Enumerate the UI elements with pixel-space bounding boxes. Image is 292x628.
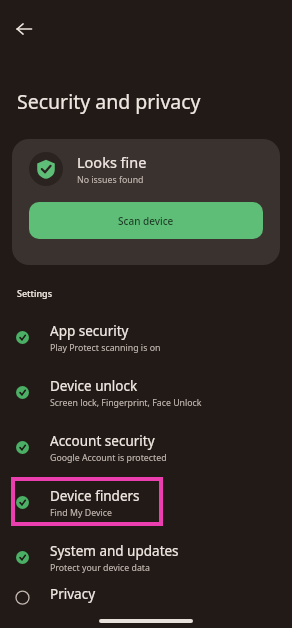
button[interactable]: Device finders bbox=[0, 475, 292, 530]
button[interactable]: Device unlock bbox=[0, 365, 292, 420]
staticText: Play Protect scanning is on bbox=[50, 342, 161, 354]
staticText: No issues found bbox=[77, 174, 144, 186]
staticText: System and updates bbox=[50, 542, 179, 560]
staticText: Settings bbox=[17, 287, 53, 299]
staticText: Security and privacy bbox=[17, 88, 201, 115]
staticText: Protect your device data bbox=[50, 562, 150, 574]
staticText: Screen lock, Fingerprint, Face Unlock bbox=[50, 397, 202, 409]
staticText: Google Account is protected bbox=[50, 452, 167, 464]
staticText: Privacy bbox=[50, 585, 96, 603]
staticText: Looks fine bbox=[77, 152, 147, 172]
button[interactable]: Back bbox=[4, 9, 44, 49]
staticText: App security bbox=[50, 322, 129, 340]
staticText: Device finders bbox=[50, 487, 140, 505]
button[interactable]: Privacy bbox=[0, 585, 292, 615]
staticText: Scan device bbox=[118, 214, 174, 228]
staticText: Account security bbox=[50, 432, 155, 450]
button[interactable]: Scan device bbox=[29, 202, 263, 239]
button[interactable]: App security bbox=[0, 310, 292, 365]
staticText: Find My Device bbox=[50, 507, 112, 519]
button[interactable]: System and updates bbox=[0, 530, 292, 585]
button[interactable]: Account security bbox=[0, 420, 292, 475]
staticText: Device unlock bbox=[50, 377, 138, 395]
